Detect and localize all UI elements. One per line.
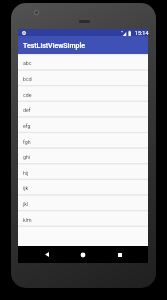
button[interactable]: abc — [18, 54, 148, 70]
staticText: jkl — [23, 201, 29, 207]
button[interactable]: Recent apps — [111, 246, 129, 263]
button[interactable]: def — [18, 101, 148, 117]
button[interactable]: ghi — [18, 148, 148, 164]
button[interactable]: efg — [18, 117, 148, 133]
button[interactable]: cde — [18, 86, 148, 102]
button[interactable]: klm — [18, 211, 148, 227]
staticText: TestListViewSimple — [23, 42, 85, 50]
staticText: ghi — [23, 154, 31, 160]
staticText: hij — [23, 170, 29, 176]
staticText: ijk — [23, 185, 29, 191]
button[interactable]: ijk — [18, 179, 148, 195]
button[interactable]: Back — [38, 246, 56, 263]
staticText: def — [23, 107, 31, 113]
staticText: klm — [23, 217, 32, 223]
staticText: efg — [23, 123, 31, 129]
staticText: 15:14 — [135, 30, 149, 36]
button[interactable]: jkl — [18, 195, 148, 211]
staticText: fgh — [23, 139, 31, 145]
button[interactable]: Home — [74, 246, 92, 263]
staticText: bcd — [23, 76, 32, 82]
staticText: cde — [23, 92, 32, 98]
button[interactable]: hij — [18, 164, 148, 180]
button[interactable]: fgh — [18, 133, 148, 149]
staticText: abc — [23, 60, 32, 66]
button[interactable]: bcd — [18, 70, 148, 86]
